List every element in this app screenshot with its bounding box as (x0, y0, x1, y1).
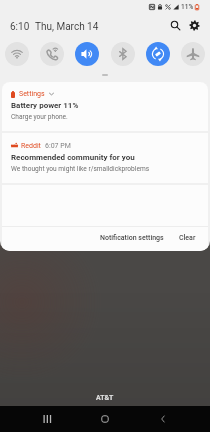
button[interactable]: Back (145, 406, 181, 432)
staticText: Clear (179, 234, 196, 242)
staticText: Thu, March 14 (35, 21, 99, 33)
button[interactable]: Reddit (2, 133, 208, 183)
staticText: 11% (181, 3, 194, 11)
staticText: 6:10 (10, 21, 30, 33)
staticText: Charge your phone. (11, 113, 68, 121)
staticText: Notification settings (100, 234, 164, 242)
button[interactable]: Auto rotate (146, 42, 170, 66)
button[interactable]: Airplane mode (181, 42, 205, 66)
button[interactable]: Notification settings (97, 231, 167, 245)
button[interactable]: Settings (2, 82, 208, 131)
staticText: AT&T (96, 394, 114, 402)
staticText: Settings (19, 90, 45, 98)
staticText: Reddit (21, 142, 41, 150)
button[interactable]: Home (87, 406, 123, 432)
button[interactable]: Sound (75, 42, 99, 66)
button[interactable]: Clear (176, 231, 199, 245)
button[interactable]: Bluetooth (111, 42, 135, 66)
staticText: 6:07 PM (45, 142, 71, 150)
button[interactable]: Settings (186, 17, 203, 34)
button[interactable]: Search (167, 17, 184, 34)
button[interactable]: Calls over Wi-Fi (40, 42, 64, 66)
staticText: We thought you might like r/smalldickpro… (11, 165, 150, 173)
button[interactable]: Wi-Fi (5, 42, 29, 66)
staticText: Recommended community for you (11, 153, 135, 162)
button[interactable]: Recent apps (29, 406, 65, 432)
staticText: Battery power 11% (11, 101, 79, 110)
